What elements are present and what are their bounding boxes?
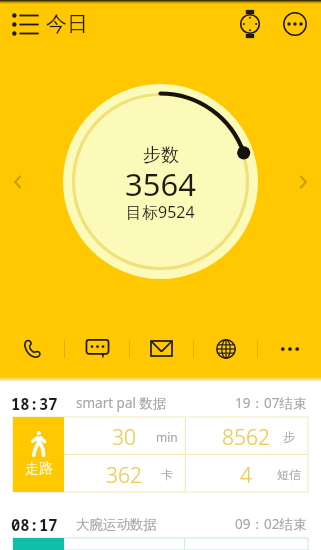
staticText: smart pal 数据 [76, 394, 167, 412]
staticText: 362 [106, 461, 142, 490]
button[interactable]: Watch [236, 0, 264, 48]
button[interactable]: Browser [194, 326, 257, 371]
staticText: 今日 [46, 11, 88, 37]
button[interactable]: 今日 [11, 0, 88, 48]
button[interactable]: Messages [65, 326, 129, 371]
button[interactable]: 18:37 [0, 389, 321, 417]
staticText: 目标9524 [126, 201, 195, 223]
staticText: 步 [283, 429, 295, 444]
staticText: 大腕运动数据 [76, 516, 157, 533]
staticText: 短信 [277, 467, 301, 482]
button[interactable]: Call [0, 326, 64, 371]
staticText: 步数 [143, 144, 179, 167]
button[interactable]: 08:17 [0, 510, 321, 538]
button[interactable]: 走路 [13, 417, 308, 492]
staticText: min [156, 429, 178, 445]
staticText: 8562 [222, 423, 270, 452]
button[interactable] [13, 538, 308, 550]
staticText: 30 [112, 423, 136, 452]
staticText: 19：07结束 [235, 394, 307, 412]
staticText: 08:17 [11, 514, 58, 535]
button[interactable]: Next day [291, 170, 315, 194]
staticText: 卡 [161, 467, 173, 482]
staticText: 18:37 [11, 393, 58, 414]
button[interactable]: Previous day [6, 170, 30, 194]
button[interactable]: More [258, 326, 321, 371]
staticText: 4 [240, 461, 252, 490]
staticText: 09：02结束 [235, 515, 307, 533]
button[interactable]: Mail [130, 326, 193, 371]
button[interactable]: More options [280, 0, 310, 48]
staticText: 走路 [25, 460, 53, 478]
staticText: 3564 [125, 163, 196, 205]
